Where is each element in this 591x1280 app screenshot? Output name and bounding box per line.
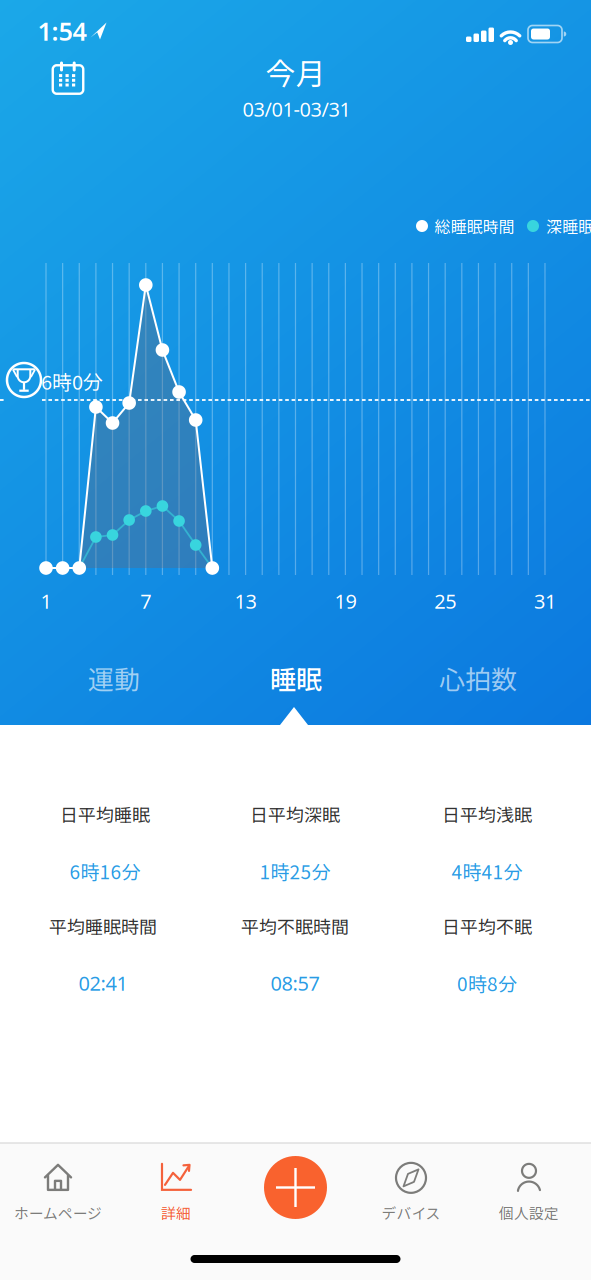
staticText: 19 [334, 588, 356, 614]
staticText: 運動 [88, 659, 140, 697]
staticText: 日平均浅眠 [442, 801, 532, 827]
staticText: 1 [40, 588, 51, 614]
staticText: 02:41 [78, 970, 127, 996]
staticText: 平均睡眠時間 [49, 913, 157, 939]
button[interactable]: 期間を選択 [215, 55, 375, 135]
staticText: 03/01-03/31 [242, 96, 350, 122]
button[interactable]: 個人設定 [471, 1156, 587, 1228]
staticText: 個人設定 [499, 1202, 559, 1223]
button[interactable]: 睡眠 [221, 652, 371, 704]
staticText: 日平均深眠 [250, 801, 340, 827]
staticText: 日平均睡眠 [60, 801, 150, 827]
staticText: 6時16分 [69, 857, 140, 885]
staticText: ホームページ [14, 1202, 102, 1223]
staticText: 今月 [265, 50, 325, 94]
button[interactable]: 運動 [39, 652, 189, 704]
staticText: 睡眠 [270, 659, 322, 697]
staticText: 08:57 [270, 970, 319, 996]
staticText: 1時25分 [259, 857, 330, 885]
staticText: 25 [434, 588, 456, 614]
staticText: 13 [235, 588, 257, 614]
staticText: 6時0分 [41, 366, 103, 395]
button[interactable]: ホームページ [0, 1156, 116, 1228]
staticText: 詳細 [161, 1202, 191, 1223]
staticText: 心拍数 [439, 659, 517, 697]
staticText: 7 [140, 588, 151, 614]
staticText: 日平均不眠 [442, 913, 532, 939]
staticText: 4時41分 [451, 857, 522, 885]
staticText: デバイス [381, 1202, 440, 1223]
button[interactable]: 追加 [264, 1156, 327, 1219]
staticText: 深睡眠 [546, 214, 591, 238]
button[interactable]: 詳細 [118, 1156, 234, 1228]
button[interactable]: カレンダー [45, 52, 91, 96]
staticText: 総睡眠時間 [434, 214, 514, 238]
staticText: 1:54 [37, 14, 86, 48]
button[interactable]: デバイス [353, 1156, 469, 1228]
staticText: 平均不眠時間 [241, 913, 349, 939]
button[interactable]: 心拍数 [403, 652, 553, 704]
staticText: 0時8分 [457, 969, 517, 997]
staticText: 31 [534, 588, 556, 614]
